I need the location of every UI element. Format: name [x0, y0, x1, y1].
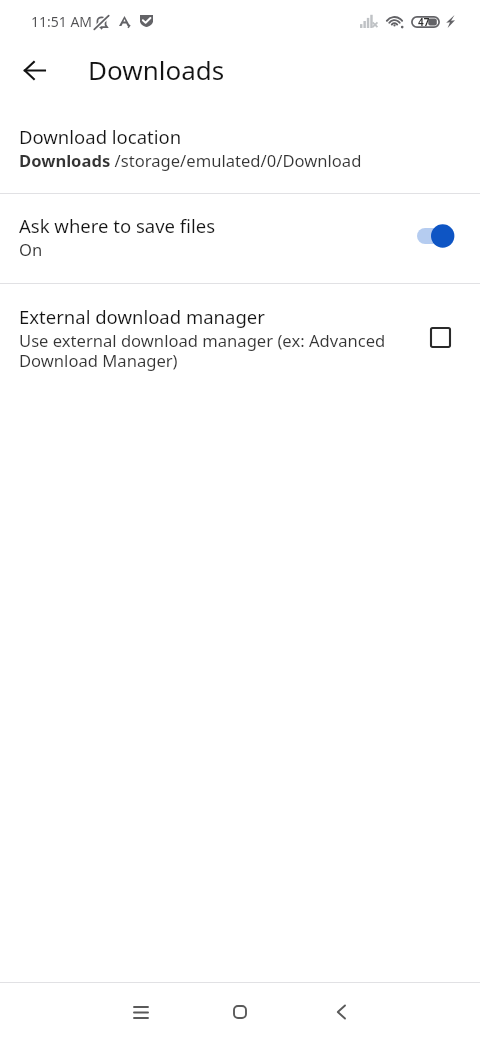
staticText: External download manager — [19, 304, 265, 329]
staticText: Downloads — [88, 52, 225, 87]
button[interactable]: Download location — [0, 105, 480, 193]
button[interactable]: Ask where to save files toggle — [417, 221, 459, 251]
staticText: Ask where to save files — [19, 213, 216, 238]
staticText: Downloads /storage/emulated/0/Download — [19, 149, 362, 172]
staticText: Use external download manager (ex: Advan… — [19, 329, 406, 372]
button[interactable]: Home — [216, 988, 264, 1036]
staticText: 11:51 AM — [31, 12, 93, 31]
button[interactable]: External download manager — [0, 284, 480, 384]
button[interactable]: Back — [317, 988, 365, 1036]
staticText: 47 — [418, 15, 430, 29]
button[interactable]: Recent apps — [117, 988, 165, 1036]
button[interactable]: External download manager checkbox — [420, 317, 460, 357]
staticText: On — [19, 238, 43, 261]
staticText: Download location — [19, 124, 182, 149]
button[interactable]: Ask where to save files — [0, 194, 480, 283]
button[interactable]: Back — [10, 46, 58, 94]
